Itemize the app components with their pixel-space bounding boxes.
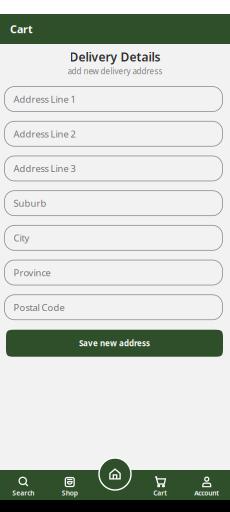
button[interactable]: Postal Code [4, 295, 222, 320]
button[interactable]: Account [185, 470, 229, 500]
button[interactable]: Address Line 2 [4, 121, 222, 146]
button[interactable]: Search [1, 470, 45, 500]
staticText: add new delivery address [67, 66, 162, 76]
staticText: Suburb [13, 197, 46, 209]
staticText: Cart [153, 489, 167, 497]
button[interactable]: Shop [48, 470, 92, 500]
button[interactable]: Address Line 3 [4, 156, 222, 181]
staticText: Shop [62, 489, 78, 497]
button[interactable]: Save new address [6, 330, 223, 357]
button[interactable]: Home [99, 458, 131, 490]
staticText: Search [12, 489, 34, 497]
staticText: Save new address [79, 338, 150, 348]
button[interactable]: Address Line 1 [4, 87, 222, 112]
staticText: Province [13, 266, 50, 279]
button[interactable]: Province [4, 260, 222, 285]
staticText: Cart [10, 22, 33, 36]
staticText: Address Line 2 [13, 128, 75, 140]
staticText: Address Line 1 [13, 93, 75, 105]
staticText: Postal Code [13, 301, 64, 313]
button[interactable]: City [4, 225, 222, 250]
button[interactable]: Cart [138, 470, 182, 500]
staticText: Address Line 3 [13, 162, 75, 175]
staticText: City [13, 232, 29, 244]
staticText: Account [194, 489, 219, 497]
button[interactable]: Suburb [4, 191, 222, 216]
staticText: Delivery Details [69, 49, 160, 65]
